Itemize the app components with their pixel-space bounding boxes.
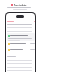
button[interactable] [7, 42, 35, 47]
button[interactable] [7, 48, 35, 53]
button[interactable] [7, 33, 35, 41]
staticText: Insights [14, 4, 27, 6]
